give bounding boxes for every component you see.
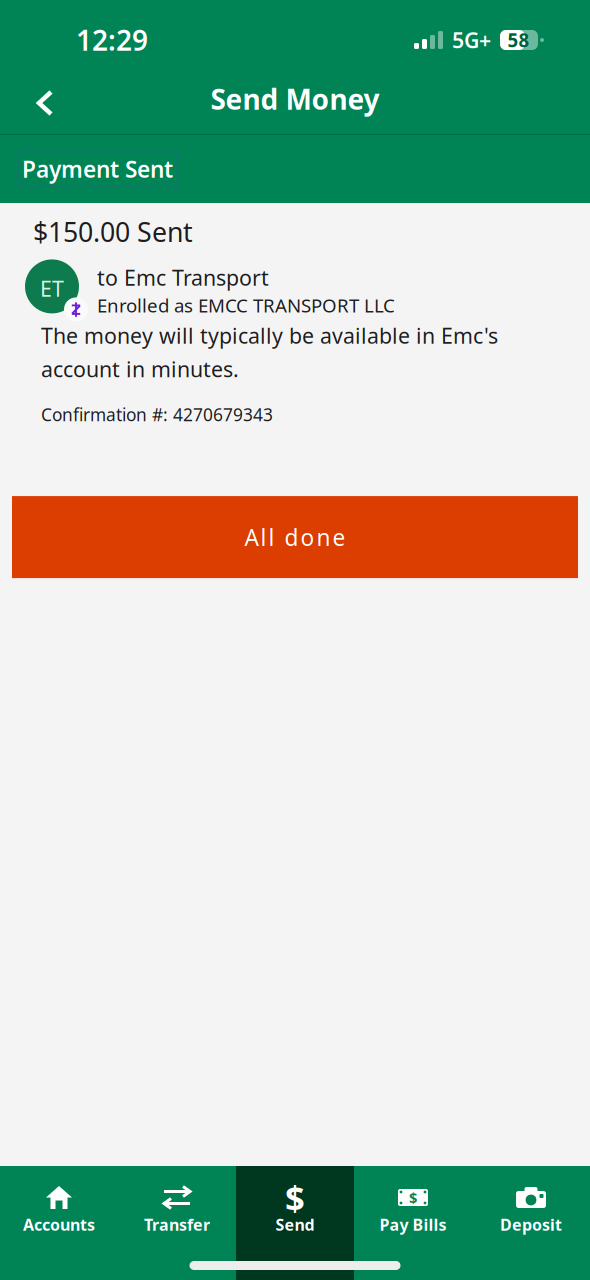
- button[interactable]: Back: [0, 60, 80, 138]
- staticText: Transfer: [144, 1214, 210, 1235]
- staticText: to Emc Transport: [97, 263, 269, 292]
- button[interactable]: Transfer: [118, 1166, 236, 1280]
- button[interactable]: Deposit: [472, 1166, 590, 1280]
- staticText: The money will typically be available in…: [41, 321, 498, 383]
- button[interactable]: $: [236, 1166, 354, 1280]
- staticText: $150.00 Sent: [33, 214, 193, 249]
- staticText: Send Money: [210, 80, 379, 118]
- button[interactable]: Accounts: [0, 1166, 118, 1280]
- staticText: All done: [244, 522, 345, 552]
- staticText: Pay Bills: [379, 1214, 446, 1235]
- button[interactable]: $: [354, 1166, 472, 1280]
- staticText: Send: [275, 1214, 314, 1235]
- staticText: ET: [40, 274, 64, 302]
- staticText: 58: [507, 28, 529, 52]
- staticText: Enrolled as EMCC TRANSPORT LLC: [97, 293, 395, 317]
- staticText: 5G+: [452, 26, 491, 54]
- staticText: Accounts: [23, 1214, 95, 1235]
- staticText: $: [285, 1174, 305, 1220]
- staticText: Payment Sent: [22, 154, 173, 184]
- staticText: Confirmation #: 4270679343: [41, 403, 273, 426]
- staticText: Deposit: [500, 1214, 562, 1235]
- button[interactable]: All done: [12, 496, 578, 578]
- staticText: 12:29: [76, 21, 148, 59]
- staticText: $: [409, 1188, 417, 1207]
